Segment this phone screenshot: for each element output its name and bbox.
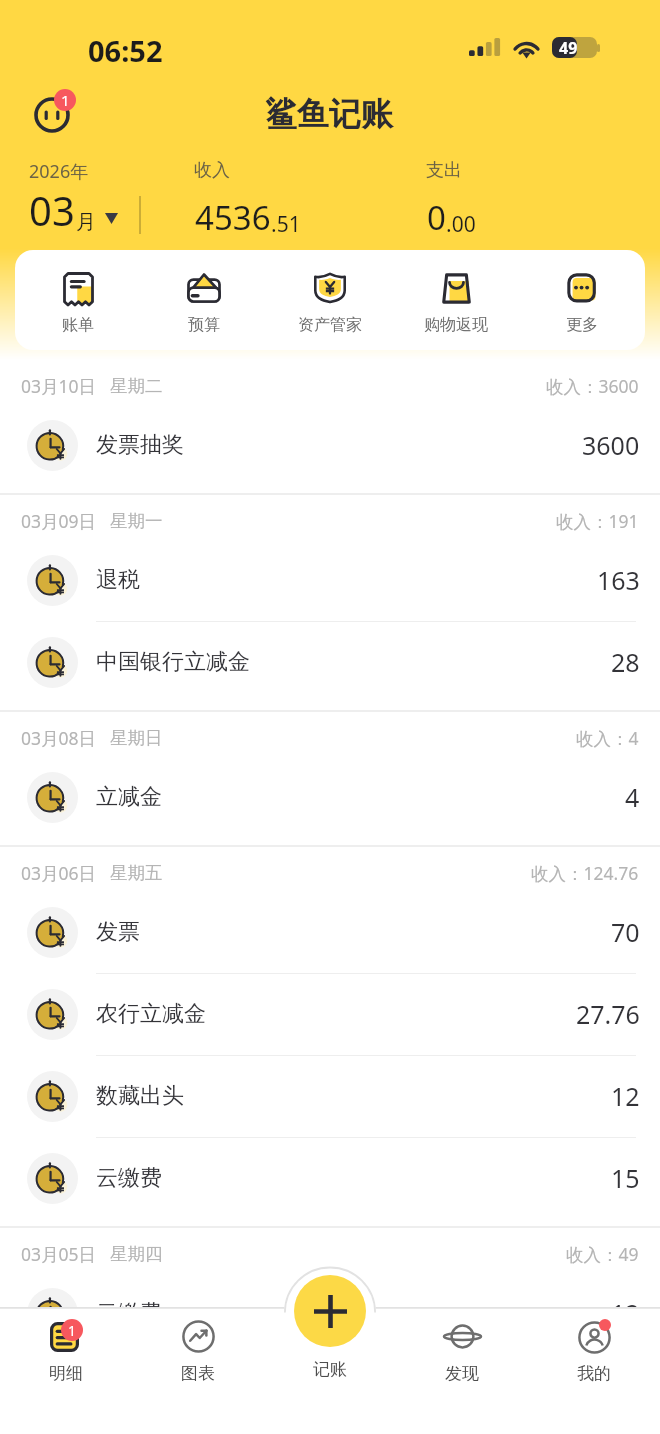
staticText: 数藏出头 — [96, 1082, 184, 1110]
button[interactable]: 1 — [0, 1307, 132, 1434]
button[interactable]: 农行立减金 — [0, 973, 660, 1055]
button[interactable]: 资产管家 — [267, 250, 393, 335]
staticText: .51 — [271, 210, 301, 239]
staticText: 月 — [76, 210, 96, 235]
button[interactable]: 云缴费 — [0, 1272, 660, 1354]
staticText: 1 — [61, 90, 70, 110]
staticText: 收入 — [194, 159, 230, 182]
button[interactable]: 发票抽奖 — [0, 404, 660, 486]
staticText: 记账 — [313, 1359, 347, 1380]
button[interactable]: 我的 — [528, 1307, 660, 1434]
staticText: 3600 — [582, 428, 640, 462]
staticText: 0 — [427, 195, 446, 240]
staticText: 星期四 — [110, 1243, 163, 1265]
staticText: 支出 — [426, 159, 462, 182]
staticText: 云缴费 — [96, 1164, 162, 1192]
button[interactable]: 记账 — [294, 1275, 366, 1347]
staticText: 70 — [611, 915, 640, 949]
staticText: 03月05日 — [21, 1242, 97, 1266]
staticText: 星期日 — [110, 727, 163, 749]
staticText: 收入：124.76 — [531, 861, 639, 885]
button[interactable]: Profile — [24, 86, 80, 142]
staticText: 发票抽奖 — [96, 431, 184, 459]
staticText: 明细 — [49, 1363, 83, 1384]
staticText: 4536 — [195, 195, 271, 240]
staticText: 03月08日 — [21, 726, 97, 750]
staticText: 49 — [559, 37, 578, 58]
staticText: 退税 — [96, 566, 140, 594]
staticText: 发现 — [445, 1363, 479, 1384]
staticText: 1 — [68, 1321, 77, 1340]
staticText: 163 — [597, 563, 640, 597]
staticText: 鲨鱼记账 — [265, 94, 393, 134]
staticText: 星期一 — [110, 510, 163, 532]
button[interactable]: 退税 — [0, 539, 660, 621]
staticText: 27.76 — [576, 997, 640, 1031]
staticText: 图表 — [181, 1363, 215, 1384]
staticText: 收入：4 — [576, 726, 639, 750]
staticText: 购物返现 — [424, 315, 488, 335]
button[interactable]: 发票 — [0, 891, 660, 973]
staticText: 立减金 — [96, 783, 162, 811]
staticText: 03 — [29, 183, 75, 237]
staticText: 12 — [611, 1296, 640, 1330]
staticText: 账单 — [62, 315, 94, 335]
staticText: 星期二 — [110, 375, 163, 397]
staticText: 星期五 — [110, 862, 163, 884]
button[interactable]: 图表 — [132, 1307, 264, 1434]
staticText: 我的 — [577, 1363, 611, 1384]
button[interactable]: 发现 — [396, 1307, 528, 1434]
staticText: 4 — [625, 780, 640, 814]
staticText: 农行立减金 — [96, 1000, 206, 1028]
button[interactable]: 2026年 — [24, 152, 113, 206]
button[interactable]: 记账 — [264, 1307, 396, 1434]
staticText: 28 — [611, 645, 640, 679]
button[interactable]: 数藏出头 — [0, 1055, 660, 1137]
button[interactable]: 账单 — [15, 250, 141, 335]
staticText: 06:52 — [88, 31, 163, 70]
button[interactable]: 更多 — [519, 250, 645, 335]
button[interactable]: 云缴费 — [0, 1137, 660, 1219]
staticText: 中国银行立减金 — [96, 648, 250, 676]
staticText: 03月06日 — [21, 861, 97, 885]
button[interactable]: 立减金 — [0, 756, 660, 838]
button[interactable]: 预算 — [141, 250, 267, 335]
button[interactable]: 中国银行立减金 — [0, 621, 660, 703]
staticText: 收入：3600 — [546, 374, 639, 398]
staticText: 预算 — [188, 315, 220, 335]
staticText: 收入：49 — [566, 1242, 639, 1266]
staticText: 2026年 — [29, 159, 89, 184]
staticText: 发票 — [96, 918, 140, 946]
staticText: 收入：191 — [556, 509, 639, 533]
staticText: 资产管家 — [298, 315, 362, 335]
staticText: 03月09日 — [21, 509, 97, 533]
staticText: 15 — [611, 1161, 640, 1195]
staticText: .00 — [446, 210, 476, 239]
staticText: 12 — [611, 1079, 640, 1113]
staticText: 云缴费 — [96, 1299, 162, 1327]
staticText: 更多 — [566, 315, 598, 335]
staticText: 03月10日 — [21, 374, 97, 398]
button[interactable]: 购物返现 — [393, 250, 519, 335]
